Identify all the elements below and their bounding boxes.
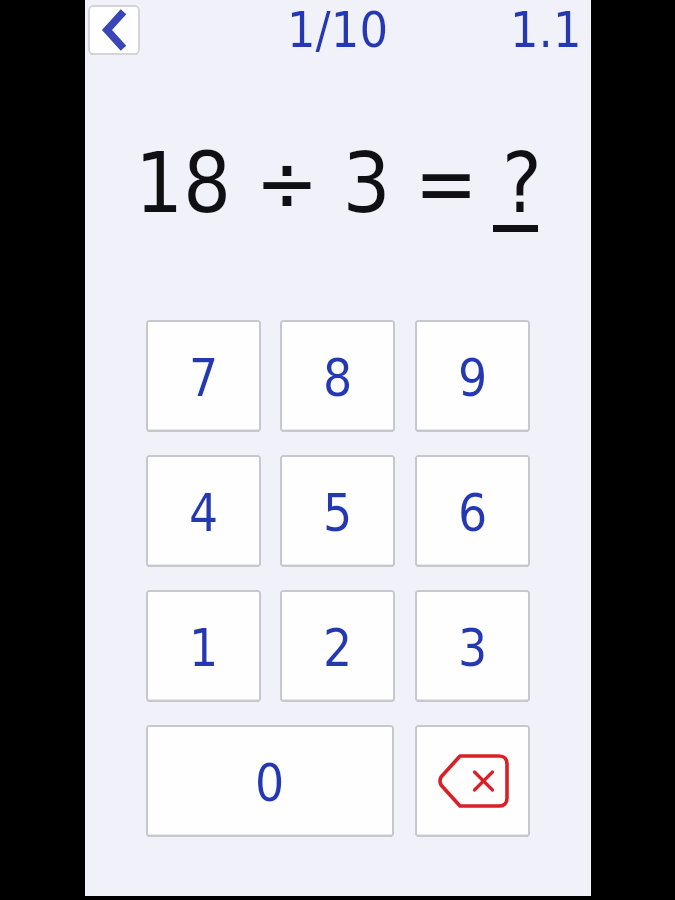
button[interactable]: 4 — [146, 455, 261, 567]
button[interactable]: 6 — [415, 455, 530, 567]
staticText: 1/10 — [287, 1, 389, 59]
button[interactable]: 8 — [280, 320, 395, 432]
staticText: 9 — [458, 349, 488, 408]
button[interactable] — [88, 5, 140, 55]
staticText: 18 ÷ 3 = ? — [135, 134, 542, 232]
button[interactable]: 1 — [146, 590, 261, 702]
button[interactable] — [415, 725, 530, 837]
button[interactable]: 7 — [146, 320, 261, 432]
staticText: 0 — [255, 754, 285, 813]
staticText: 4 — [189, 484, 219, 543]
button[interactable]: 9 — [415, 320, 530, 432]
button[interactable]: 3 — [415, 590, 530, 702]
staticText: 8 — [323, 349, 353, 408]
button[interactable]: 5 — [280, 455, 395, 567]
staticText: 2 — [323, 619, 353, 678]
button[interactable]: 2 — [280, 590, 395, 702]
button[interactable]: 0 — [146, 725, 394, 837]
staticText: 5 — [323, 484, 353, 543]
staticText: 3 — [458, 619, 488, 678]
staticText: 1 — [189, 619, 219, 678]
staticText: 6 — [458, 484, 488, 543]
staticText: 1.1 — [510, 1, 582, 59]
staticText: 7 — [189, 349, 219, 408]
